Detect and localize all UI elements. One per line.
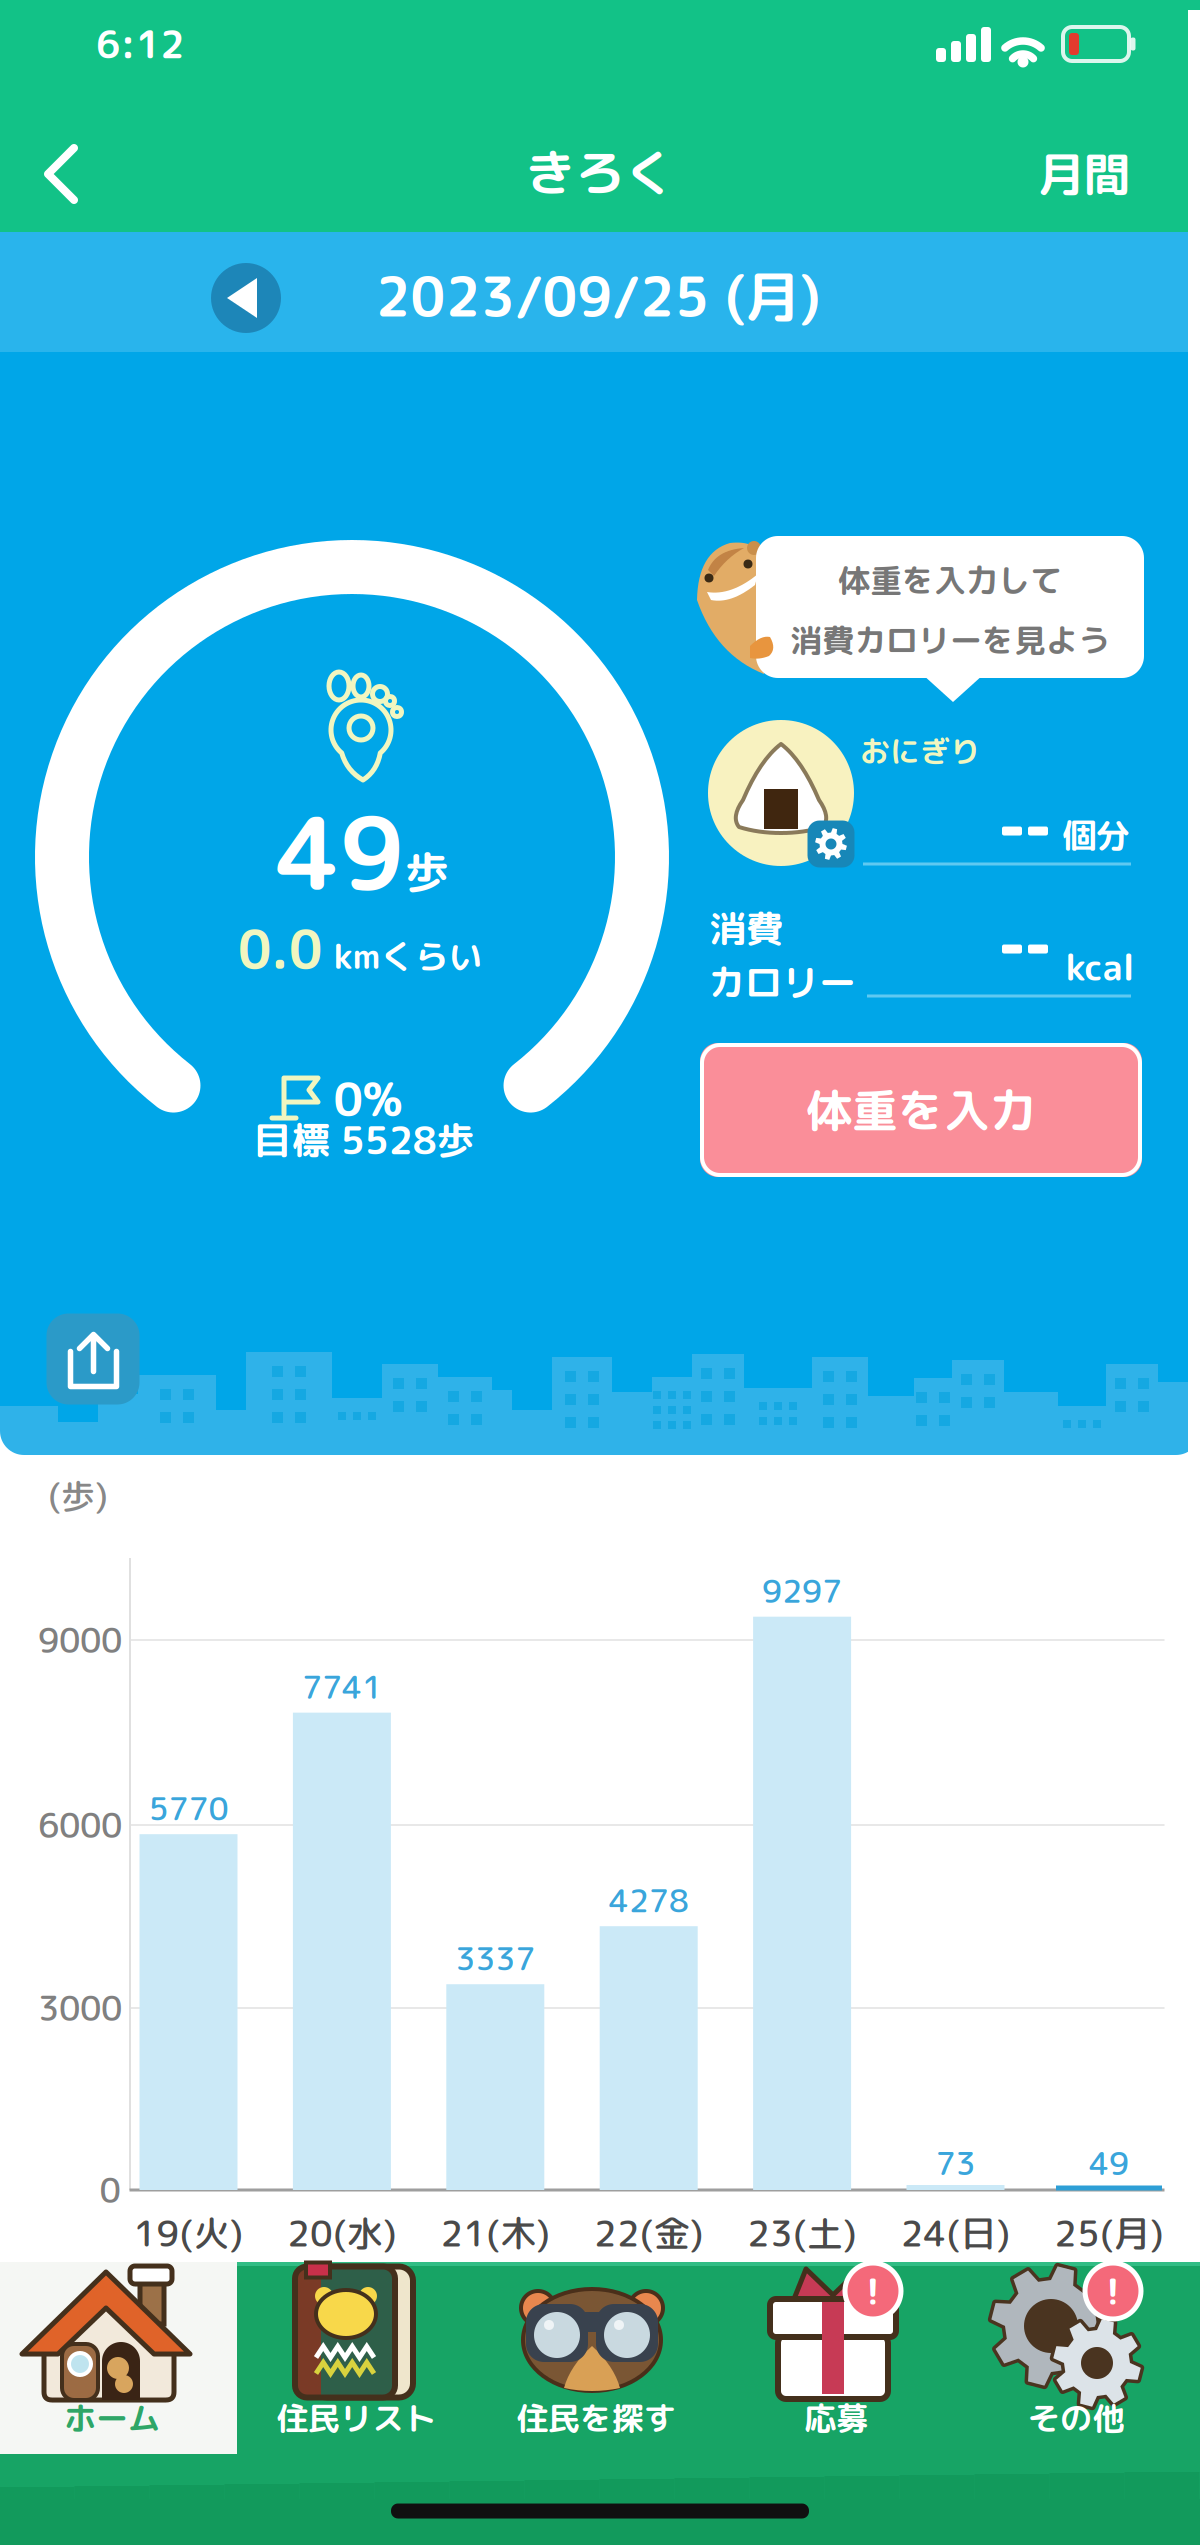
staticText: 19(火) bbox=[133, 2208, 243, 2258]
staticText: 4278 bbox=[609, 1878, 689, 1922]
staticText: きろく bbox=[525, 137, 675, 207]
staticText: 5770 bbox=[148, 1786, 228, 1830]
staticText: 住民を探す bbox=[516, 2396, 676, 2440]
button[interactable]: その他 bbox=[956, 2262, 1196, 2454]
staticText: 消費カロリーを見よう bbox=[790, 618, 1110, 662]
staticText: 9297 bbox=[762, 1568, 842, 1613]
staticText: 24(日) bbox=[900, 2208, 1010, 2258]
staticText: 73 bbox=[935, 2141, 975, 2185]
staticText: 0.0 bbox=[238, 913, 322, 985]
button[interactable]: 応募 bbox=[716, 2262, 956, 2454]
staticText: 9000 bbox=[38, 1616, 122, 1664]
staticText: 49 bbox=[276, 782, 404, 922]
staticText: 3337 bbox=[455, 1936, 535, 1980]
staticText: 0% bbox=[333, 1067, 402, 1131]
staticText: おにぎり bbox=[860, 730, 980, 772]
button[interactable]: Onigiri settings bbox=[807, 820, 854, 867]
staticText: 歩 bbox=[405, 841, 449, 903]
staticText: 20(水) bbox=[287, 2208, 397, 2258]
staticText: 応募 bbox=[804, 2396, 868, 2440]
button[interactable]: 月間 bbox=[1019, 134, 1149, 214]
button[interactable]: Previous day bbox=[211, 263, 281, 333]
button[interactable]: 住民リスト bbox=[236, 2262, 476, 2454]
staticText: 0 bbox=[99, 2166, 120, 2214]
button[interactable]: ホーム bbox=[0, 2262, 237, 2454]
button[interactable]: 体重を入力 bbox=[700, 1043, 1142, 1177]
staticText: 目標 5528歩 bbox=[253, 1113, 474, 1166]
staticText: 月間 bbox=[1038, 142, 1130, 206]
staticText: カロリー bbox=[708, 956, 856, 1008]
staticText: 21(木) bbox=[440, 2208, 550, 2258]
staticText: 22(金) bbox=[594, 2208, 704, 2258]
staticText: 7741 bbox=[302, 1664, 382, 1709]
staticText: 6000 bbox=[38, 1801, 122, 1849]
staticText: ! bbox=[1106, 2266, 1120, 2316]
staticText: ! bbox=[866, 2266, 880, 2316]
button[interactable]: Back bbox=[26, 142, 96, 206]
staticText: 体重を入力 bbox=[806, 1078, 1036, 1142]
staticText: 25(月) bbox=[1054, 2208, 1164, 2258]
staticText: kmくらい bbox=[333, 932, 482, 980]
staticText: 23(土) bbox=[747, 2208, 857, 2258]
staticText: 消費 bbox=[709, 902, 783, 954]
staticText: 個分 bbox=[1062, 811, 1130, 859]
button[interactable]: 住民を探す bbox=[476, 2262, 716, 2454]
staticText: 体重を入力して bbox=[838, 558, 1062, 602]
staticText: 3000 bbox=[38, 1984, 122, 2032]
staticText: 住民リスト bbox=[276, 2396, 436, 2440]
staticText: kcal bbox=[1065, 942, 1134, 992]
staticText: ホーム bbox=[64, 2396, 160, 2440]
staticText: 49 bbox=[1089, 2141, 1129, 2185]
staticText: その他 bbox=[1028, 2396, 1124, 2440]
staticText: 2023/09/25 (月) bbox=[375, 258, 820, 334]
button[interactable]: Share bbox=[46, 1313, 139, 1404]
staticText: 6:12 bbox=[96, 17, 184, 70]
staticText: (歩) bbox=[48, 1472, 108, 1520]
